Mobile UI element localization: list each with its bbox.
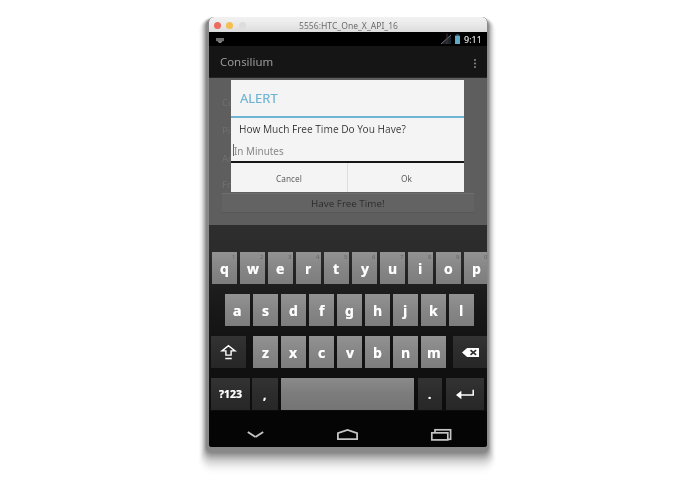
button[interactable]: f [309, 294, 334, 326]
button[interactable]: a [225, 294, 250, 326]
staticText: , [263, 386, 267, 402]
button[interactable]: Have Free Time! [222, 193, 474, 213]
staticText: ?123 [219, 387, 243, 401]
staticText: o [444, 259, 453, 278]
staticText: ALERT [240, 89, 278, 107]
staticText: q [220, 259, 229, 278]
button[interactable]: m [421, 336, 446, 368]
button[interactable]: 0 [464, 252, 487, 284]
button[interactable]: v [337, 336, 362, 368]
staticText: k [429, 301, 438, 320]
staticText: Cancel [276, 173, 302, 184]
button[interactable]: h [365, 294, 390, 326]
staticText: x [289, 343, 298, 362]
staticText: Ok [401, 173, 412, 184]
staticText: f [319, 301, 325, 320]
staticText: Consilium is ready [222, 96, 304, 109]
staticText: Add a new activity [222, 152, 303, 165]
staticText: m [427, 343, 441, 362]
staticText: j [403, 301, 408, 320]
staticText: In Minutes [234, 144, 284, 157]
staticText: Consilium [220, 54, 274, 70]
button[interactable]: More options [463, 46, 487, 78]
staticText: s [262, 301, 270, 320]
staticText: 7 [400, 253, 404, 261]
button[interactable]: s [253, 294, 278, 326]
staticText: Free time planner [222, 178, 302, 191]
staticText: y [361, 259, 369, 278]
staticText: . [428, 386, 432, 402]
button[interactable]: n [393, 336, 418, 368]
staticText: u [388, 259, 398, 278]
button[interactable]: x [281, 336, 306, 368]
button[interactable]: Consilium is ready [222, 89, 487, 115]
button[interactable]: 8 [408, 252, 433, 284]
staticText: Pick what to do now [222, 124, 312, 137]
button[interactable]: 7 [380, 252, 405, 284]
staticText: 5 [344, 253, 348, 261]
button[interactable]: l [449, 294, 474, 326]
staticText: 5556:HTC_One_X_API_16 [299, 20, 398, 32]
button[interactable]: d [281, 294, 306, 326]
staticText: 0 [484, 253, 487, 261]
button[interactable]: Shift [211, 336, 246, 368]
staticText: v [346, 343, 354, 362]
staticText: b [373, 343, 382, 362]
button[interactable]: g [337, 294, 362, 326]
button[interactable]: 4 [296, 252, 321, 284]
button[interactable]: j [393, 294, 418, 326]
button[interactable]: Ok [348, 163, 464, 192]
button[interactable]: ?123 [211, 378, 250, 410]
button[interactable]: Back [209, 411, 301, 447]
button[interactable]: Free time planner [222, 171, 487, 197]
staticText: How Much Free Time Do You Have? [239, 122, 406, 136]
staticText: a [233, 301, 242, 320]
button[interactable]: 3 [268, 252, 293, 284]
staticText: 8 [428, 253, 432, 261]
staticText: g [345, 301, 354, 320]
staticText: d [289, 301, 298, 320]
button[interactable]: Pick what to do now [222, 117, 487, 143]
button[interactable]: Enter [446, 378, 484, 410]
staticText: 2 [260, 253, 264, 261]
staticText: 9:11 [464, 33, 482, 45]
button[interactable]: c [309, 336, 334, 368]
staticText: i [418, 259, 423, 278]
button[interactable]: b [365, 336, 390, 368]
staticText: 1 [232, 253, 236, 261]
staticText: h [373, 301, 383, 320]
staticText: t [333, 259, 340, 278]
button[interactable]: 5 [324, 252, 349, 284]
button[interactable]: , [252, 378, 278, 410]
staticText: 3 [288, 253, 292, 261]
button[interactable]: Backspace [453, 336, 487, 368]
staticText: 4 [316, 253, 320, 261]
staticText: Have Free Time! [311, 197, 385, 210]
staticText: 9 [456, 253, 460, 261]
staticText: p [472, 259, 481, 278]
button[interactable]: 9 [436, 252, 461, 284]
button[interactable]: Add a new activity [222, 145, 487, 171]
staticText: l [459, 301, 464, 320]
button[interactable]: 1 [212, 252, 237, 284]
staticText: n [401, 343, 411, 362]
staticText: c [318, 343, 326, 362]
button[interactable]: Cancel [231, 163, 347, 192]
button[interactable]: z [253, 336, 278, 368]
button[interactable]: . [418, 378, 442, 410]
staticText: z [262, 343, 269, 362]
button[interactable]: 2 [240, 252, 265, 284]
staticText: r [305, 259, 312, 278]
button[interactable]: Space [281, 378, 414, 410]
button[interactable]: Recents [394, 411, 487, 447]
staticText: w [247, 259, 259, 278]
staticText: 6 [372, 253, 376, 261]
button[interactable]: k [421, 294, 446, 326]
button[interactable]: 6 [352, 252, 377, 284]
staticText: e [276, 259, 285, 278]
button[interactable]: Home [301, 411, 394, 447]
